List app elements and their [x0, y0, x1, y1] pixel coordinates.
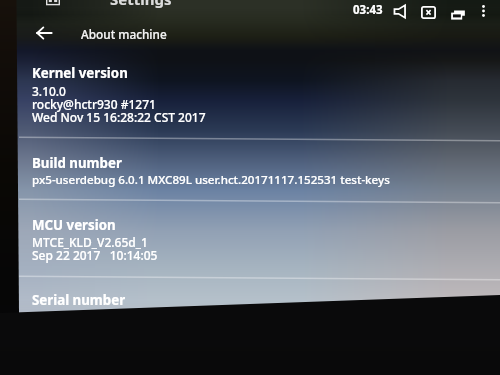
button[interactable]: Storage — [451, 10, 465, 20]
staticText: Kernel version — [32, 64, 128, 82]
button[interactable]: Back — [30, 20, 58, 46]
button[interactable]: No SIM card — [421, 6, 436, 19]
staticText: Build number — [32, 154, 122, 172]
staticText: 03:43 — [353, 2, 383, 18]
staticText: px5-userdebug 6.0.1 MXC89L user.hct.2017… — [32, 172, 390, 188]
button[interactable] — [19, 20, 500, 50]
staticText: 3.10.0 — [32, 83, 66, 99]
staticText: Settings — [110, 0, 172, 9]
staticText: Sep 22 2017 10:14:05 — [32, 247, 158, 263]
button[interactable]: Volume — [394, 5, 406, 18]
button[interactable]: More options — [477, 4, 490, 18]
staticText: Wed Nov 15 16:28:22 CST 2017 — [32, 109, 206, 125]
staticText: Serial number — [32, 291, 126, 309]
button[interactable]: Settings icon — [46, 0, 60, 6]
button[interactable] — [0, 277, 500, 312]
button[interactable] — [0, 139, 500, 199]
staticText: MCU version — [32, 216, 116, 234]
staticText: rocky@hctr930 #1271 — [32, 96, 156, 112]
staticText: MTCE_KLD_V2.65d_1 — [32, 234, 148, 250]
staticText: About machine — [81, 26, 167, 42]
button[interactable] — [0, 50, 500, 138]
button[interactable] — [0, 200, 500, 276]
